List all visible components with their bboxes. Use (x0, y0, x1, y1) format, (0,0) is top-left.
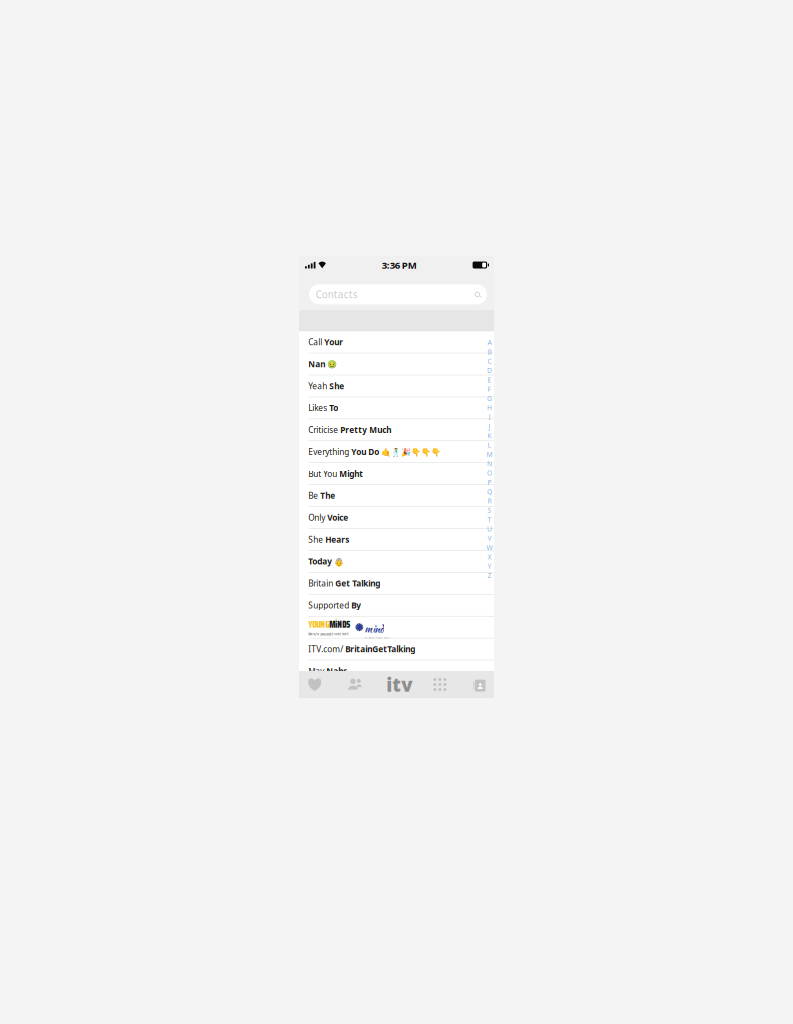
staticText: Z (487, 571, 491, 580)
staticText: W (486, 543, 492, 552)
staticText: Supported By (308, 600, 361, 611)
staticText: for better mental health (364, 636, 389, 639)
button[interactable]: ITV (379, 671, 419, 698)
button[interactable]: Contacts (458, 671, 499, 698)
staticText: L (487, 440, 491, 450)
button[interactable]: Nan 🤢 (299, 353, 494, 375)
staticText: Q (487, 487, 492, 496)
staticText: mind (364, 622, 383, 636)
staticText: Mav Nahs (308, 666, 347, 677)
staticText: Everything You Do 🤙🕺🎉👇👇👇 (308, 446, 441, 457)
staticText: N (487, 459, 492, 468)
button[interactable]: But You Might (299, 463, 494, 485)
staticText: J (488, 422, 490, 431)
staticText: Likes To (308, 402, 338, 413)
button[interactable]: Alphabet index (485, 338, 494, 580)
staticText: K (487, 431, 491, 440)
staticText: U (487, 524, 492, 533)
staticText: C (487, 356, 491, 366)
button[interactable]: Contacts (309, 284, 487, 304)
button[interactable]: Be The (299, 485, 494, 507)
staticText: H (487, 403, 492, 412)
button[interactable]: She Hears (299, 529, 494, 551)
staticText: i (335, 618, 337, 632)
staticText: P (487, 478, 491, 487)
staticText: Today 👵 (308, 556, 344, 567)
staticText: She Hears (308, 534, 349, 545)
staticText: E (487, 375, 491, 384)
staticText: Yeah She (308, 380, 344, 391)
staticText: A (487, 338, 491, 347)
staticText: Only Voice (308, 512, 348, 523)
staticText: itv (386, 672, 412, 697)
button[interactable]: ITV.com/ BritainGetTalking (299, 638, 494, 660)
staticText: O (487, 468, 492, 478)
button[interactable]: Groups (335, 671, 375, 698)
button[interactable]: Keypad (420, 671, 460, 698)
staticText: Be The (308, 490, 335, 501)
staticText: Call Your (308, 337, 343, 348)
button[interactable]: Today 👵 (299, 551, 494, 573)
button[interactable]: Only Voice (299, 507, 494, 529)
staticText: Contacts (316, 288, 358, 301)
button[interactable]: Britain Get Talking (299, 573, 494, 594)
staticText: M (486, 450, 492, 459)
staticText: S (487, 506, 491, 515)
staticText: F (487, 384, 491, 394)
staticText: B (487, 347, 491, 356)
staticText: X (487, 552, 491, 561)
staticText: Britain Get Talking (308, 578, 380, 589)
button[interactable]: Call Your (299, 331, 494, 353)
staticText: D (487, 366, 492, 375)
staticText: V (487, 533, 491, 543)
staticText: M (329, 618, 335, 632)
staticText: T (487, 515, 491, 524)
staticText: Y (487, 561, 491, 571)
staticText: G (487, 394, 492, 403)
button[interactable]: Supported By (299, 595, 494, 616)
button[interactable]: Yeah She (299, 375, 494, 397)
staticText: I (488, 412, 490, 422)
button[interactable]: YOUNG (299, 616, 494, 638)
staticText: Criticise Pretty Much (308, 424, 391, 435)
staticText: 3:36 PM (382, 258, 417, 272)
button[interactable]: Everything You Do 🤙🕺🎉👇👇👇 (299, 441, 494, 463)
button[interactable]: Criticise Pretty Much (299, 419, 494, 441)
staticText: But You Might (308, 468, 363, 479)
staticText: NDS (337, 618, 350, 632)
staticText: fighting for young people's mental healt… (308, 632, 348, 636)
staticText: Nan 🤢 (308, 358, 337, 369)
staticText: YOUNG (308, 618, 329, 632)
button[interactable]: Favourites (294, 671, 335, 698)
staticText: ITV.com/ BritainGetTalking (308, 644, 415, 655)
button[interactable]: Mav Nahs (299, 660, 494, 682)
staticText: R (487, 496, 491, 506)
button[interactable]: Likes To (299, 397, 494, 419)
